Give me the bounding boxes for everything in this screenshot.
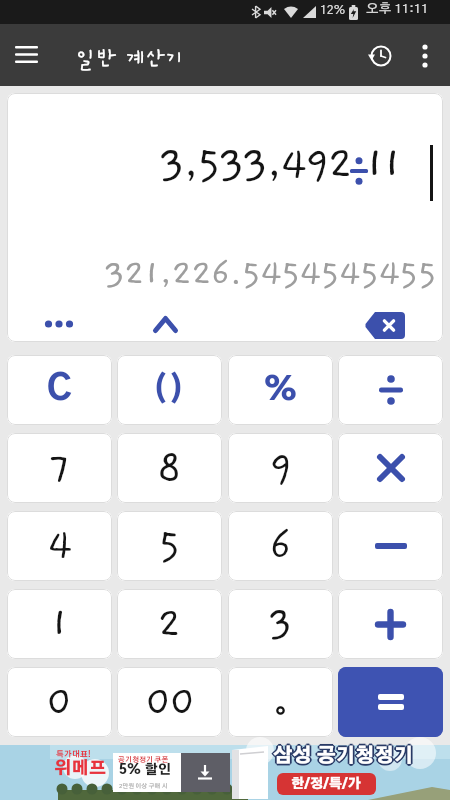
staticText: 한/정/특/가 — [291, 778, 362, 791]
staticText: 삼성 공기청정기 — [271, 747, 412, 766]
staticText: 삼성 공기청정기 — [273, 745, 414, 764]
staticText: 오후 11:11 — [366, 3, 429, 16]
staticText: 00 — [145, 679, 194, 725]
staticText: 7 — [49, 445, 71, 491]
staticText: 삼성 공기청정기 — [272, 748, 413, 767]
staticText: 삼성 공기청정기 — [273, 749, 414, 768]
staticText: 8 — [157, 445, 182, 491]
staticText: 삼성 공기청정기 — [273, 747, 414, 766]
staticText: 5% 할인 — [119, 764, 171, 777]
staticText: 삼성 공기청정기 — [275, 747, 416, 766]
staticText: 2만원 이상 구매 시 — [119, 783, 168, 789]
staticText: 특가대표! — [56, 751, 91, 759]
staticText: 321,226.5454545455 — [104, 254, 436, 294]
staticText: 0 — [46, 679, 73, 725]
staticText: 9 — [269, 445, 293, 491]
staticText: 위메프 — [54, 760, 106, 777]
staticText: 2 — [157, 601, 182, 647]
staticText: % — [263, 375, 298, 406]
staticText: 3 — [268, 601, 293, 647]
staticText: 4 — [47, 523, 73, 569]
staticText: 5 — [158, 523, 181, 569]
staticText: 삼성 공기청정기 — [272, 746, 413, 765]
staticText: 12% — [320, 4, 346, 16]
staticText: 1 — [50, 601, 69, 647]
staticText: 삼성 공기청정기 — [274, 746, 415, 765]
staticText: C — [47, 373, 72, 407]
staticText: 삼성 공기청정기 — [274, 748, 415, 767]
staticText: 공기청정기 쿠폰 — [118, 756, 169, 763]
staticText: () — [153, 375, 186, 405]
staticText: 3,533,492 — [159, 140, 351, 189]
staticText: 일반 계산기 — [76, 47, 185, 71]
staticText: 11 — [365, 140, 400, 189]
staticText: 6 — [269, 523, 292, 569]
